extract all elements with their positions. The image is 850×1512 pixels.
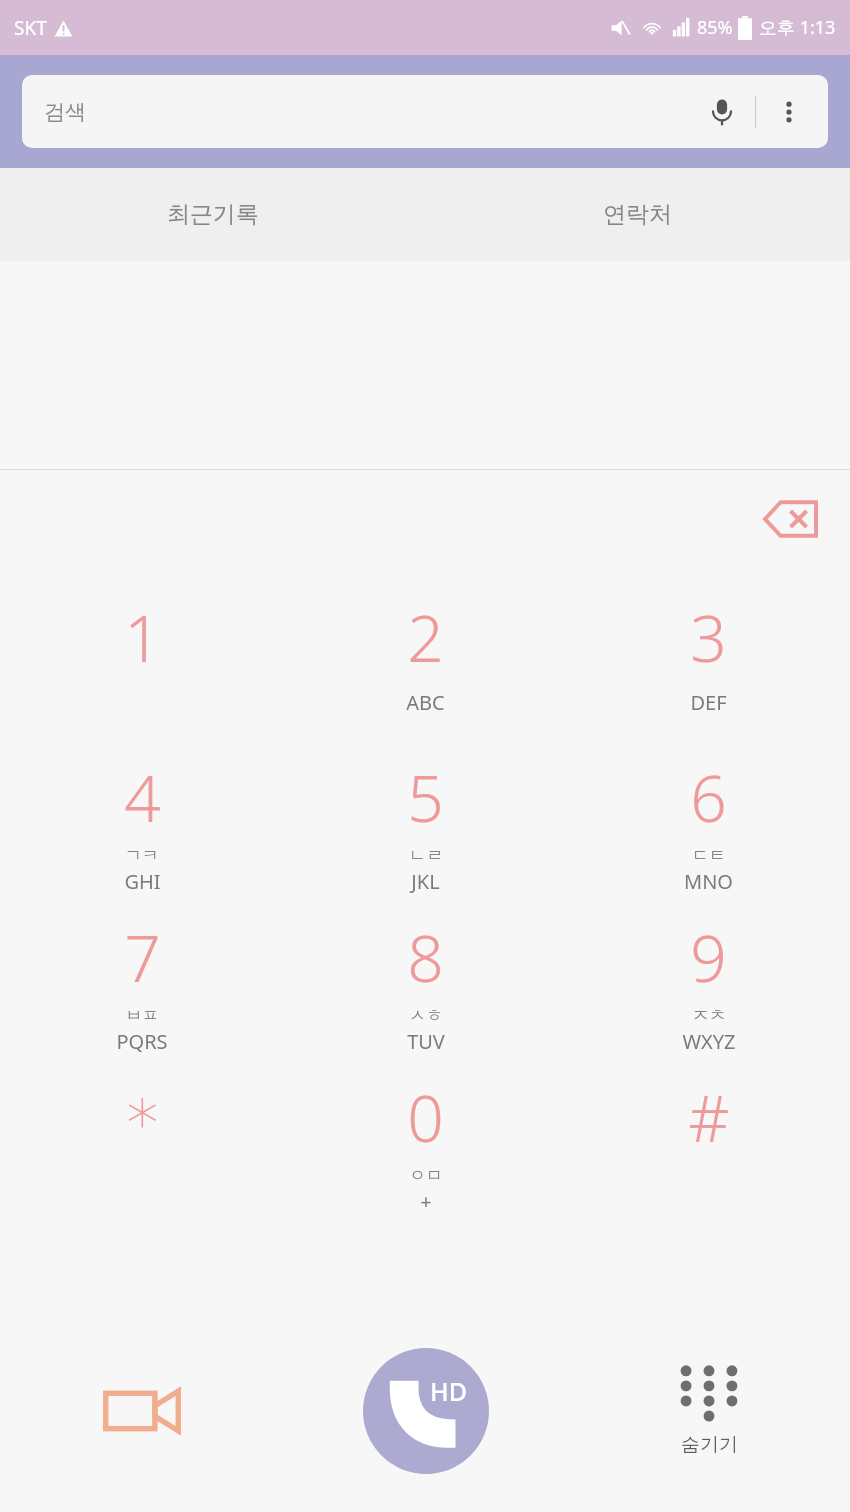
staticText: WXYZ: [682, 1028, 736, 1055]
staticText: HD: [430, 1374, 467, 1408]
staticText: DEF: [690, 689, 727, 716]
staticText: 2: [407, 594, 444, 681]
staticText: ㅅㅎ: [409, 1005, 443, 1026]
staticText: JKL: [411, 868, 440, 895]
staticText: 오후 1:13: [759, 15, 836, 40]
staticText: 6: [690, 754, 727, 841]
button[interactable]: 5: [284, 748, 567, 908]
button[interactable]: 최근기록: [0, 168, 425, 261]
staticText: ㄱㅋ: [125, 845, 159, 866]
button[interactable]: Voice search: [699, 89, 745, 135]
staticText: 7: [124, 914, 161, 1001]
button[interactable]: 6: [567, 748, 850, 908]
staticText: 8: [407, 914, 444, 1001]
button[interactable]: 3: [567, 588, 850, 748]
button[interactable]: Video call: [0, 1326, 284, 1496]
staticText: 4: [124, 754, 161, 841]
button[interactable]: 9: [567, 908, 850, 1068]
staticText: #: [688, 1074, 730, 1161]
staticText: ㄴㄹ: [409, 845, 443, 866]
button[interactable]: 연락처: [425, 168, 850, 261]
button[interactable]: More options: [766, 89, 812, 135]
staticText: 3: [690, 594, 727, 681]
staticText: PQRS: [116, 1028, 168, 1055]
staticText: +: [420, 1188, 432, 1215]
staticText: 숨기기: [681, 1433, 738, 1457]
button[interactable]: Call: [363, 1348, 489, 1474]
button[interactable]: 2: [284, 588, 567, 748]
staticText: GHI: [124, 868, 161, 895]
staticText: 검색: [44, 99, 86, 125]
staticText: TUV: [407, 1028, 445, 1055]
button[interactable]: 0: [284, 1068, 567, 1228]
button[interactable]: 7: [0, 908, 284, 1068]
staticText: 1: [124, 594, 161, 681]
button[interactable]: 4: [0, 748, 284, 908]
staticText: 85%: [697, 15, 733, 40]
button[interactable]: ∗: [0, 1068, 284, 1228]
staticText: ㅂㅍ: [125, 1005, 159, 1026]
staticText: ABC: [406, 689, 445, 716]
staticText: MNO: [684, 868, 733, 895]
staticText: ∗: [122, 1074, 163, 1149]
staticText: ㄷㅌ: [692, 845, 726, 866]
staticText: 연락처: [603, 200, 672, 229]
staticText: 9: [690, 914, 727, 1001]
staticText: 최근기록: [167, 200, 259, 229]
button[interactable]: 1: [0, 588, 284, 748]
staticText: SKT: [14, 15, 47, 41]
button[interactable]: Backspace: [750, 480, 828, 558]
staticText: ㅈㅊ: [692, 1005, 726, 1026]
button[interactable]: 검색: [22, 75, 828, 148]
staticText: 0: [407, 1074, 444, 1161]
button[interactable]: 숨기기: [567, 1326, 850, 1496]
button[interactable]: #: [567, 1068, 850, 1228]
button[interactable]: 8: [284, 908, 567, 1068]
staticText: 5: [407, 754, 444, 841]
staticText: ㅇㅁ: [409, 1165, 443, 1186]
